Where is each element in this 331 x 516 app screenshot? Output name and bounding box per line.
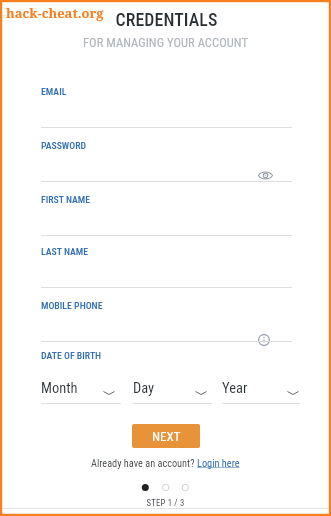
button[interactable]: Login here bbox=[197, 457, 240, 469]
staticText: Month bbox=[41, 380, 78, 397]
other: Show password bbox=[258, 171, 273, 180]
staticText: DATE OF BIRTH bbox=[41, 350, 102, 361]
staticText: CREDENTIALS bbox=[1, 9, 331, 30]
staticText: FOR MANAGING YOUR ACCOUNT bbox=[0, 35, 331, 50]
button[interactable]: Year bbox=[222, 380, 300, 404]
staticText: Already have an account? bbox=[91, 457, 197, 469]
staticText: hack-cheat.org bbox=[6, 4, 104, 22]
button[interactable]: NEXT bbox=[132, 424, 200, 448]
staticText: LAST NAME bbox=[41, 246, 89, 257]
button[interactable]: EMAIL bbox=[41, 86, 292, 128]
button[interactable]: LAST NAME bbox=[41, 246, 292, 288]
other: More information bbox=[258, 334, 270, 346]
staticText: NEXT bbox=[152, 429, 181, 444]
staticText: STEP 1 / 3 bbox=[0, 498, 331, 508]
staticText: PASSWORD bbox=[41, 140, 87, 151]
staticText: Year bbox=[222, 380, 248, 397]
staticText: Day bbox=[133, 380, 155, 397]
button[interactable]: Month bbox=[41, 380, 121, 404]
button[interactable]: FIRST NAME bbox=[41, 194, 292, 236]
button[interactable]: Day bbox=[133, 380, 212, 404]
staticText: FIRST NAME bbox=[41, 194, 91, 205]
button[interactable]: MOBILE PHONE bbox=[41, 300, 292, 342]
staticText: EMAIL bbox=[41, 86, 67, 97]
button[interactable]: PASSWORD bbox=[41, 140, 292, 182]
staticText: MOBILE PHONE bbox=[41, 300, 103, 311]
